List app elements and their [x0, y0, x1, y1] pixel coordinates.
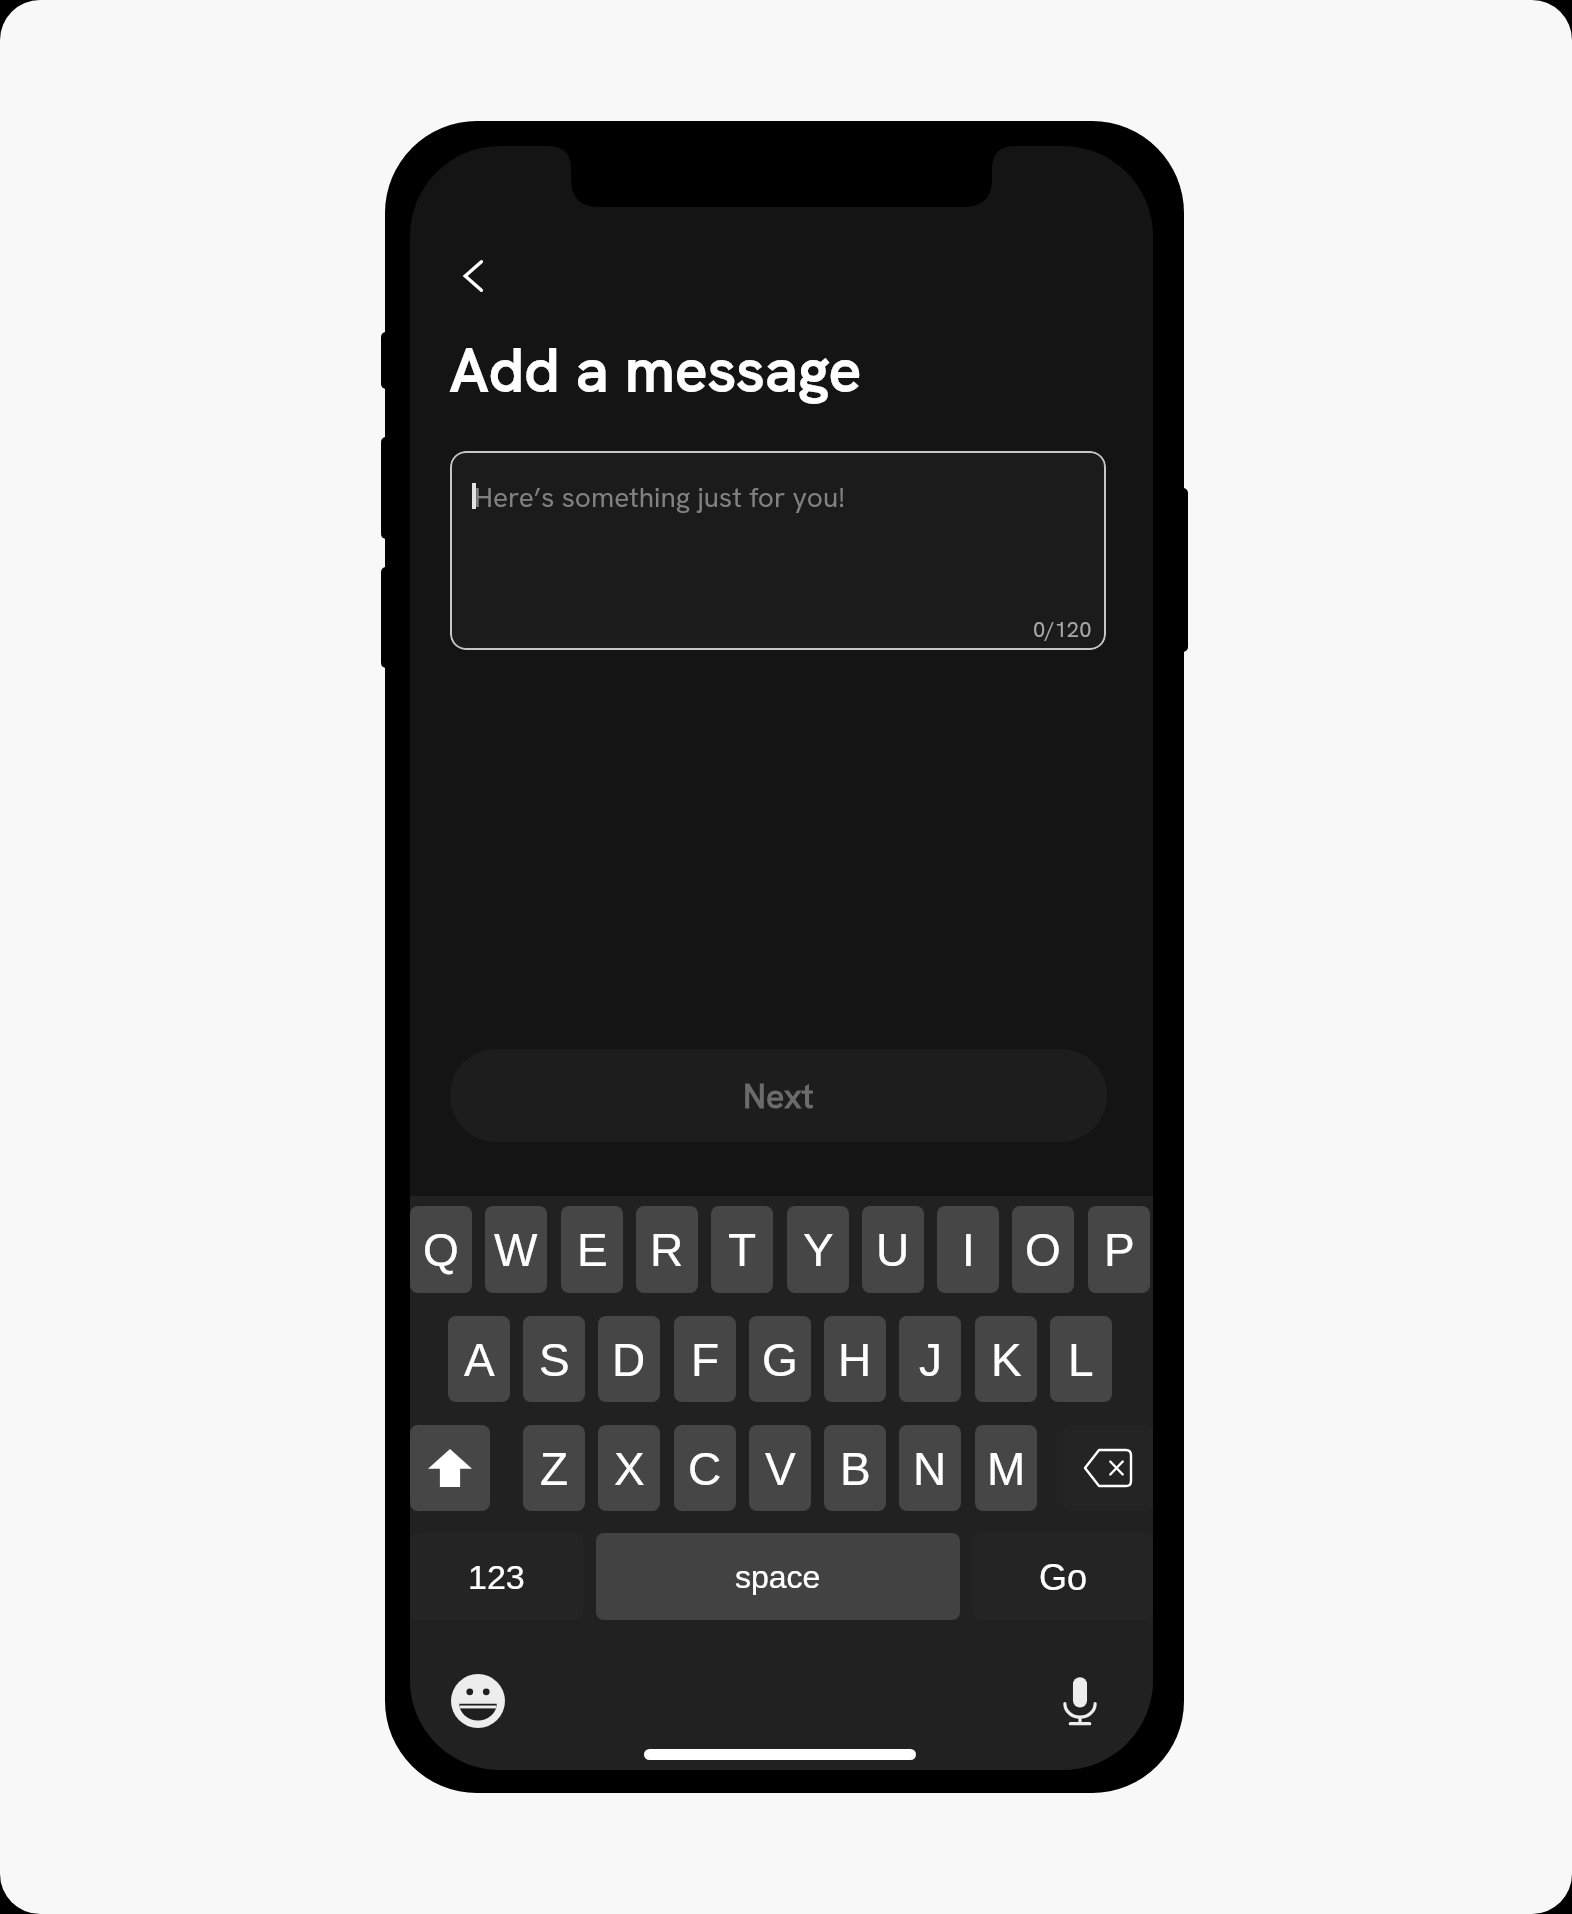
staticText: Go: [1039, 1557, 1088, 1597]
button[interactable]: F: [674, 1316, 736, 1402]
staticText: space: [735, 1559, 821, 1595]
staticText: 123: [468, 1558, 525, 1596]
button[interactable]: X: [598, 1425, 660, 1511]
button[interactable]: C: [674, 1425, 736, 1511]
staticText: F: [691, 1334, 720, 1385]
button[interactable]: Go: [973, 1533, 1153, 1620]
staticText: Y: [803, 1224, 834, 1275]
button[interactable]: L: [1050, 1316, 1112, 1402]
staticText: H: [838, 1334, 872, 1385]
button[interactable]: E: [561, 1206, 623, 1293]
button[interactable]: Y: [787, 1206, 849, 1293]
staticText: A: [464, 1334, 495, 1385]
staticText: D: [612, 1334, 646, 1385]
button[interactable]: space: [596, 1533, 960, 1620]
staticText: Here’s something just for you!: [474, 479, 845, 515]
staticText: G: [762, 1334, 798, 1385]
staticText: V: [765, 1443, 796, 1494]
staticText: C: [688, 1443, 722, 1494]
button[interactable]: Shift: [410, 1425, 490, 1511]
staticText: U: [876, 1224, 910, 1275]
staticText: R: [650, 1224, 684, 1275]
staticText: O: [1025, 1224, 1061, 1275]
staticText: E: [577, 1224, 608, 1275]
button[interactable]: P: [1088, 1206, 1150, 1293]
button[interactable]: Q: [410, 1206, 472, 1293]
button[interactable]: Here’s something just for you!: [450, 451, 1106, 650]
staticText: Z: [540, 1443, 569, 1494]
button[interactable]: U: [862, 1206, 924, 1293]
button[interactable]: H: [824, 1316, 886, 1402]
staticText: S: [539, 1334, 570, 1385]
button[interactable]: D: [598, 1316, 660, 1402]
button[interactable]: I: [937, 1206, 999, 1293]
staticText: N: [913, 1443, 947, 1494]
button[interactable]: V: [749, 1425, 811, 1511]
button[interactable]: Back: [442, 248, 504, 303]
button[interactable]: Voice input: [1050, 1671, 1110, 1731]
button[interactable]: S: [523, 1316, 585, 1402]
button[interactable]: K: [975, 1316, 1037, 1402]
staticText: W: [494, 1224, 538, 1275]
staticText: 0/120: [1033, 615, 1092, 644]
button[interactable]: G: [749, 1316, 811, 1402]
staticText: J: [919, 1334, 942, 1385]
staticText: Q: [423, 1224, 459, 1275]
button[interactable]: Next: [450, 1049, 1107, 1142]
button[interactable]: N: [899, 1425, 961, 1511]
button[interactable]: T: [711, 1206, 773, 1293]
staticText: X: [614, 1443, 645, 1494]
button[interactable]: Backspace: [1063, 1425, 1153, 1511]
staticText: T: [728, 1224, 757, 1275]
staticText: M: [987, 1443, 1026, 1494]
button[interactable]: A: [448, 1316, 510, 1402]
button[interactable]: M: [975, 1425, 1037, 1511]
staticText: Add a message: [450, 331, 862, 409]
staticText: L: [1068, 1334, 1094, 1385]
staticText: K: [991, 1334, 1022, 1385]
button[interactable]: B: [824, 1425, 886, 1511]
button[interactable]: R: [636, 1206, 698, 1293]
staticText: Next: [743, 1074, 814, 1118]
button[interactable]: J: [899, 1316, 961, 1402]
button[interactable]: Emoji: [448, 1671, 508, 1731]
staticText: B: [840, 1443, 871, 1494]
button[interactable]: 123: [410, 1533, 583, 1620]
button[interactable]: W: [485, 1206, 547, 1293]
staticText: P: [1104, 1224, 1135, 1275]
staticText: I: [962, 1224, 975, 1275]
button[interactable]: Z: [523, 1425, 585, 1511]
button[interactable]: O: [1012, 1206, 1074, 1293]
